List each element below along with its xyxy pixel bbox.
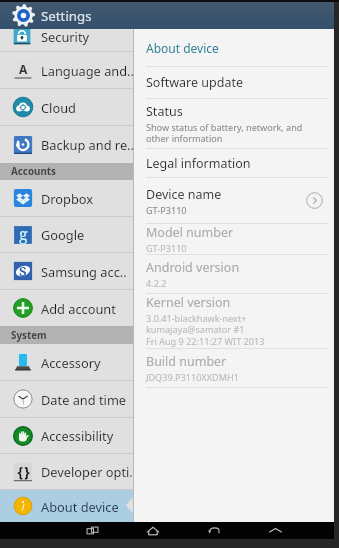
staticText: 4.2.2 xyxy=(146,277,167,289)
staticText: 3.0.41-blackhawk-next+ kumajaya@samator … xyxy=(146,312,265,348)
staticText: Android version xyxy=(146,259,240,276)
button[interactable]: Status xyxy=(134,99,334,148)
staticText: Model number xyxy=(146,224,234,241)
staticText: JDQ39.P3110XXDMH1 xyxy=(146,371,239,383)
button[interactable]: Device name xyxy=(134,178,334,223)
button[interactable]: { } xyxy=(0,454,133,489)
button[interactable]: Android version xyxy=(134,255,334,293)
button[interactable]: Legal information xyxy=(134,149,334,177)
staticText: Accounts xyxy=(11,165,56,178)
staticText: Status xyxy=(146,103,183,120)
staticText: Developer opti.. xyxy=(41,463,133,480)
staticText: Build number xyxy=(146,353,227,370)
staticText: About device xyxy=(146,40,219,56)
staticText: Device name xyxy=(146,186,222,203)
button[interactable]: Kernel version xyxy=(134,294,334,348)
staticText: Google xyxy=(41,226,85,243)
button[interactable]: Backup and re.. xyxy=(0,126,133,163)
staticText: Accessory xyxy=(41,354,101,371)
button[interactable]: g xyxy=(0,217,133,252)
button[interactable]: Dropbox xyxy=(0,180,133,216)
staticText: Samsung acc.. xyxy=(41,263,127,280)
staticText: Settings xyxy=(41,7,92,25)
staticText: S xyxy=(19,262,27,280)
button[interactable]: Hide keyboard xyxy=(263,522,287,539)
staticText: g xyxy=(19,223,28,245)
staticText: Add account xyxy=(41,300,116,317)
staticText: Language and.. xyxy=(41,62,133,79)
staticText: Security xyxy=(41,29,90,45)
button[interactable]: Add account xyxy=(0,290,133,326)
staticText: A xyxy=(19,61,28,77)
staticText: Show status of battery, network, and oth… xyxy=(146,121,303,145)
staticText: Dropbox xyxy=(41,190,94,207)
button[interactable]: Accessibility xyxy=(0,418,133,453)
staticText: Cloud xyxy=(41,99,76,116)
staticText: Kernel version xyxy=(146,294,231,311)
button[interactable]: S xyxy=(0,253,133,289)
staticText: GT-P3110 xyxy=(146,242,187,254)
staticText: GT-P3110 xyxy=(146,204,187,216)
button[interactable]: Security xyxy=(0,29,133,51)
staticText: System xyxy=(11,329,47,342)
staticText: Date and time xyxy=(41,391,127,408)
button[interactable]: Edit device name xyxy=(305,191,324,210)
button[interactable]: Back xyxy=(202,522,226,539)
staticText: Backup and re.. xyxy=(41,136,133,153)
button[interactable]: Cloud xyxy=(0,89,133,125)
button[interactable]: Settings xyxy=(12,4,35,27)
staticText: Legal information xyxy=(146,155,251,172)
staticText: { } xyxy=(11,462,35,481)
button[interactable]: Home xyxy=(141,522,165,539)
button[interactable]: Software update xyxy=(134,67,334,98)
button[interactable]: Build number xyxy=(134,349,334,387)
button[interactable]: Accessory xyxy=(0,344,133,380)
staticText: Software update xyxy=(146,74,243,91)
button[interactable]: Model number xyxy=(134,224,334,254)
button[interactable]: Recents xyxy=(80,522,104,539)
button[interactable]: About device xyxy=(0,490,133,522)
button[interactable]: Date and time xyxy=(0,381,133,417)
button[interactable]: A xyxy=(0,52,133,88)
staticText: Accessibility xyxy=(41,427,114,444)
staticText: About device xyxy=(41,498,119,515)
